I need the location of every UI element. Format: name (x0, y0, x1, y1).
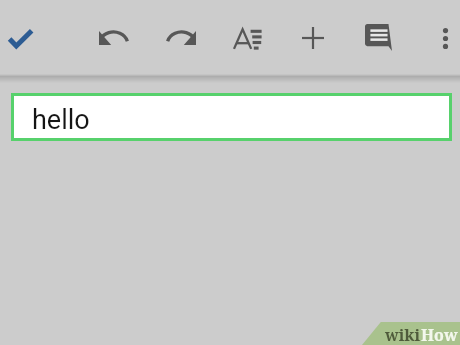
staticText: wiki (385, 324, 421, 345)
button[interactable]: Comments (363, 22, 394, 53)
button[interactable]: hello (11, 93, 452, 141)
button[interactable]: Redo (163, 22, 199, 54)
button[interactable]: Format text (231, 23, 263, 54)
button[interactable]: More options (435, 22, 456, 54)
staticText: hello (32, 104, 90, 136)
button[interactable]: Undo (95, 22, 131, 54)
staticText: How (421, 324, 458, 345)
button[interactable]: Done (8, 23, 40, 55)
button[interactable]: Insert (297, 22, 329, 54)
